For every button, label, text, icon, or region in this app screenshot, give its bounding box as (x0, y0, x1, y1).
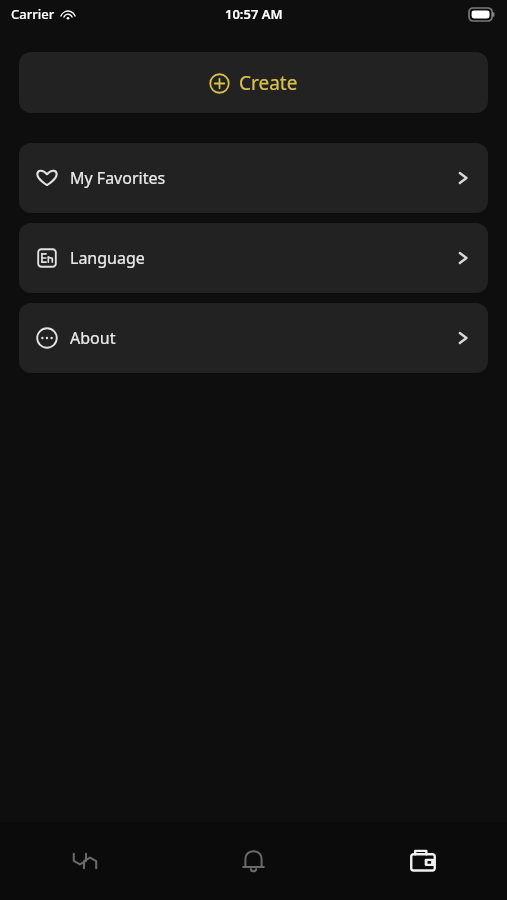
staticText: 10:57 AM (225, 5, 283, 23)
staticText: Create (239, 70, 298, 96)
button[interactable]: Create (19, 52, 488, 113)
button[interactable]: Wallet (338, 822, 507, 900)
button[interactable]: Notifications (169, 822, 338, 900)
staticText: Language (70, 247, 145, 269)
button[interactable]: Language (19, 223, 488, 293)
button[interactable]: Polygon (0, 822, 169, 900)
staticText: About (70, 327, 116, 349)
button[interactable]: My Favorites (19, 143, 488, 213)
staticText: My Favorites (70, 167, 166, 189)
staticText: Carrier (11, 5, 55, 23)
button[interactable]: About (19, 303, 488, 373)
